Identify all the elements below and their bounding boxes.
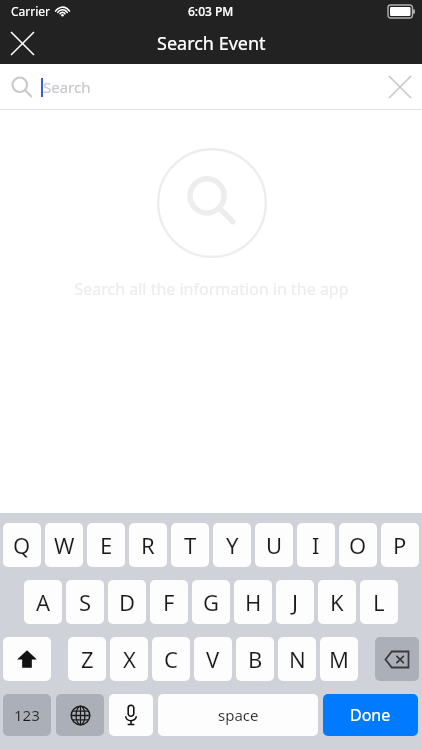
- button[interactable]: O: [339, 523, 377, 567]
- button[interactable]: 123: [3, 694, 51, 736]
- staticText: M: [329, 644, 349, 674]
- staticText: U: [266, 530, 283, 560]
- staticText: Search Event: [157, 31, 266, 56]
- staticText: Search all the information in the app: [74, 278, 349, 300]
- button[interactable]: C: [152, 637, 190, 681]
- staticText: O: [349, 530, 367, 560]
- button[interactable]: Z: [68, 637, 106, 681]
- button[interactable]: N: [278, 637, 316, 681]
- button[interactable]: D: [108, 580, 146, 624]
- staticText: Done: [350, 704, 391, 726]
- button[interactable]: Done: [323, 694, 418, 736]
- other: Shift: [16, 648, 38, 670]
- button[interactable]: Q: [3, 523, 41, 567]
- staticText: F: [163, 587, 175, 617]
- button[interactable]: W: [45, 523, 83, 567]
- staticText: Z: [81, 644, 94, 674]
- staticText: N: [289, 644, 306, 674]
- button[interactable]: L: [360, 580, 398, 624]
- button[interactable]: key: [109, 694, 153, 736]
- staticText: W: [54, 530, 75, 560]
- button[interactable]: key: [56, 694, 104, 736]
- other: Dictate: [124, 704, 138, 726]
- button[interactable]: space: [158, 694, 318, 736]
- staticText: space: [218, 705, 259, 725]
- staticText: R: [141, 530, 155, 560]
- staticText: X: [123, 644, 136, 674]
- staticText: D: [119, 587, 136, 617]
- button[interactable]: J: [276, 580, 314, 624]
- staticText: K: [330, 587, 344, 617]
- other: Backspace: [384, 650, 410, 669]
- button[interactable]: U: [255, 523, 293, 567]
- button[interactable]: K: [318, 580, 356, 624]
- button[interactable]: Clear: [378, 65, 422, 109]
- staticText: V: [206, 644, 220, 674]
- staticText: B: [248, 644, 263, 674]
- staticText: J: [292, 587, 299, 617]
- button[interactable]: key: [3, 637, 51, 681]
- staticText: 6:03 PM: [188, 3, 234, 19]
- button[interactable]: P: [381, 523, 419, 567]
- staticText: A: [36, 587, 51, 617]
- staticText: Search: [43, 77, 91, 97]
- staticText: G: [203, 587, 220, 617]
- staticText: C: [164, 644, 178, 674]
- staticText: H: [245, 587, 262, 617]
- staticText: Carrier: [11, 3, 51, 19]
- staticText: Q: [13, 530, 31, 560]
- button[interactable]: T: [171, 523, 209, 567]
- button[interactable]: Y: [213, 523, 251, 567]
- button[interactable]: R: [129, 523, 167, 567]
- button[interactable]: key: [375, 637, 419, 681]
- staticText: 123: [14, 705, 40, 725]
- button[interactable]: Close: [0, 22, 44, 64]
- button[interactable]: S: [66, 580, 104, 624]
- button[interactable]: X: [110, 637, 148, 681]
- button[interactable]: G: [192, 580, 230, 624]
- button[interactable]: F: [150, 580, 188, 624]
- button[interactable]: Search: [0, 64, 422, 109]
- staticText: L: [373, 587, 385, 617]
- staticText: P: [393, 530, 407, 560]
- button[interactable]: M: [320, 637, 358, 681]
- staticText: E: [100, 530, 113, 560]
- staticText: I: [312, 530, 320, 560]
- button[interactable]: H: [234, 580, 272, 624]
- button[interactable]: E: [87, 523, 125, 567]
- staticText: S: [79, 587, 92, 617]
- button[interactable]: I: [297, 523, 335, 567]
- button[interactable]: V: [194, 637, 232, 681]
- button[interactable]: A: [24, 580, 62, 624]
- staticText: Y: [226, 530, 239, 560]
- staticText: T: [184, 530, 197, 560]
- button[interactable]: B: [236, 637, 274, 681]
- other: Switch keyboard: [70, 705, 91, 726]
